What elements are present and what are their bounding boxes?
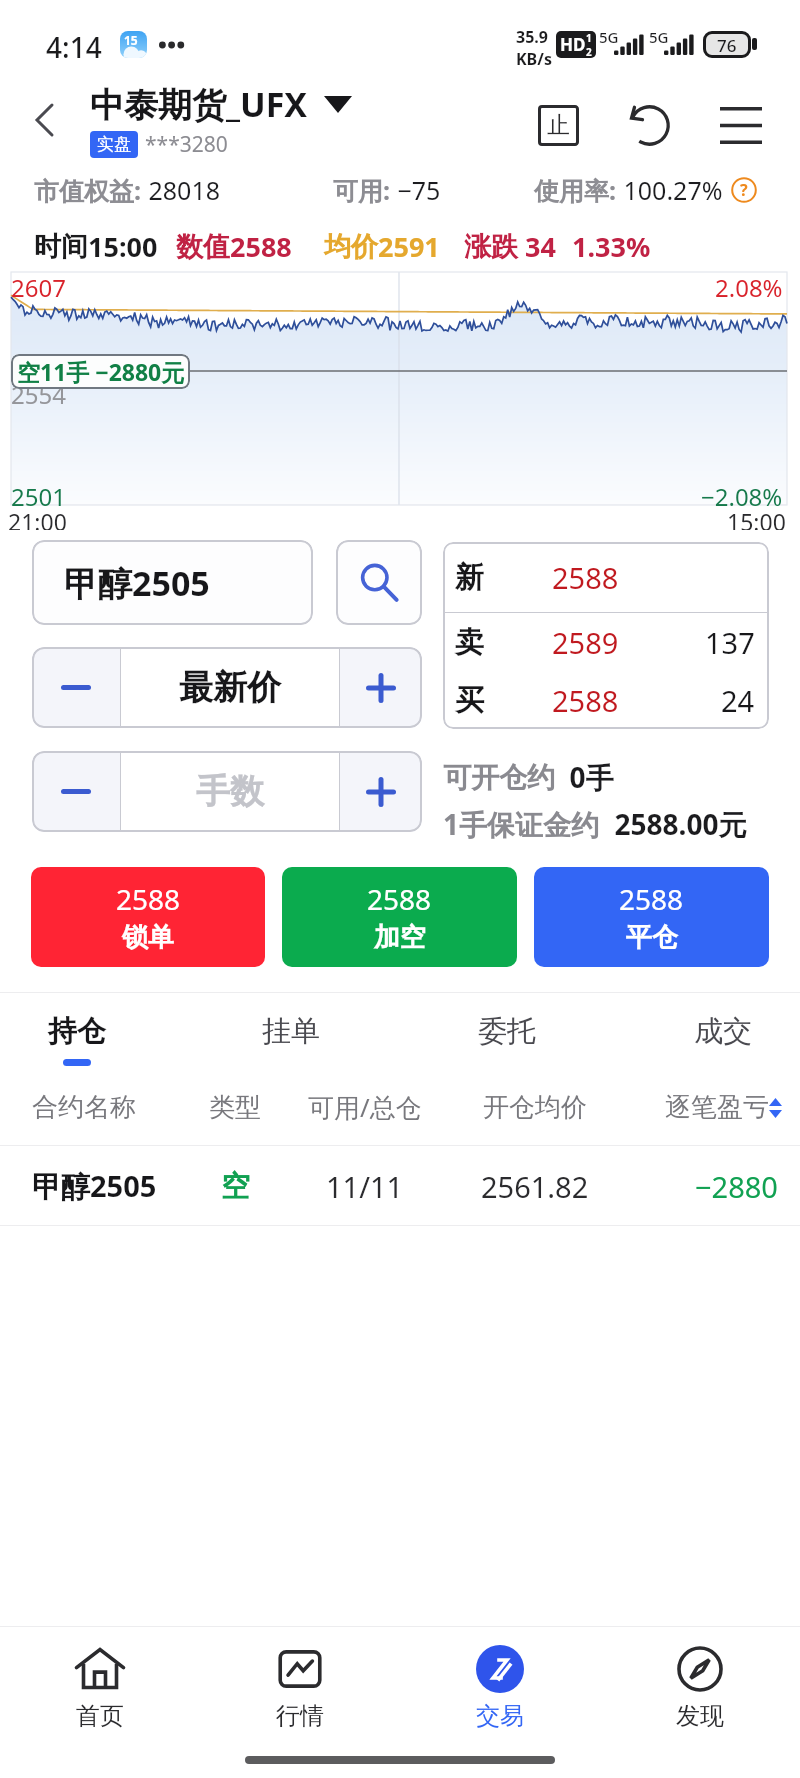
staticText: 首页 bbox=[76, 1701, 124, 1731]
staticText: 4:14 bbox=[46, 28, 102, 66]
staticText: 2588 bbox=[230, 228, 292, 265]
staticText: 1.33% bbox=[572, 228, 651, 265]
staticText: 2589 bbox=[552, 623, 619, 662]
staticText: 21:00 bbox=[8, 506, 67, 530]
staticText: 手数 bbox=[196, 770, 264, 813]
staticText: 15:00 bbox=[727, 506, 786, 530]
staticText: 1手保证金约 bbox=[443, 805, 600, 843]
staticText: 2607 bbox=[11, 271, 66, 304]
staticText: 最新价 bbox=[179, 666, 281, 709]
button[interactable]: 2588 bbox=[282, 867, 517, 967]
staticText: 止 bbox=[547, 111, 570, 140]
staticText: 空 bbox=[221, 1168, 250, 1205]
staticText: 28018 bbox=[142, 173, 221, 207]
staticText: 合约名称 bbox=[32, 1091, 136, 1124]
staticText: 平仓 bbox=[626, 921, 678, 954]
staticText: 11/11 bbox=[326, 1167, 404, 1206]
button[interactable]: 甲醇2505 bbox=[32, 540, 313, 625]
button[interactable]: Refresh bbox=[621, 97, 677, 153]
staticText: 逐笔盈亏 bbox=[665, 1091, 769, 1124]
button[interactable]: 发现 bbox=[600, 1627, 800, 1741]
staticText: 新 bbox=[455, 559, 484, 596]
staticText: 0手 bbox=[555, 758, 614, 796]
staticText: 委托 bbox=[478, 1013, 536, 1050]
staticText: 交易 bbox=[476, 1701, 524, 1731]
button[interactable]: 手数 bbox=[121, 751, 339, 832]
button[interactable]: 首页 bbox=[0, 1627, 200, 1741]
button[interactable]: Search bbox=[336, 540, 422, 625]
staticText: 中泰期货_UFX bbox=[90, 81, 308, 127]
staticText: 类型 bbox=[209, 1091, 261, 1124]
staticText: 2588 bbox=[552, 681, 619, 720]
button[interactable]: 委托 bbox=[447, 993, 567, 1068]
button[interactable]: 行情 bbox=[200, 1627, 400, 1741]
button[interactable]: 成交 bbox=[663, 993, 783, 1068]
staticText: 涨跌 bbox=[464, 230, 518, 264]
staticText: 24 bbox=[721, 681, 755, 720]
staticText: 76 bbox=[717, 34, 737, 55]
staticText: 锁单 bbox=[122, 921, 174, 954]
button[interactable]: 甲醇2505 bbox=[0, 1146, 800, 1226]
staticText: 2591 bbox=[378, 228, 440, 265]
button[interactable]: Help bbox=[730, 176, 758, 204]
staticText: 挂单 bbox=[262, 1013, 320, 1050]
staticText: 时间 bbox=[34, 230, 88, 264]
staticText: 2588.00元 bbox=[600, 805, 747, 843]
staticText: 5G bbox=[649, 27, 669, 47]
button[interactable]: 挂单 bbox=[231, 993, 351, 1068]
staticText: 2588 bbox=[116, 880, 181, 918]
button[interactable]: 持仓 bbox=[17, 993, 137, 1068]
button[interactable]: 交易 bbox=[400, 1627, 600, 1741]
button[interactable]: 2588 bbox=[534, 867, 769, 967]
staticText: 可开仓约 bbox=[443, 760, 555, 795]
staticText: 2501 bbox=[11, 480, 66, 513]
staticText: 2.08% bbox=[715, 271, 783, 304]
staticText: 加空 bbox=[374, 921, 426, 954]
staticText: 2588 bbox=[552, 558, 619, 597]
staticText: HD bbox=[560, 33, 586, 56]
staticText: 行情 bbox=[276, 1701, 324, 1731]
staticText: 2 bbox=[586, 45, 592, 58]
button[interactable]: Increase bbox=[340, 751, 422, 832]
button[interactable]: 止损设置 bbox=[530, 97, 586, 153]
staticText: 开仓均价 bbox=[483, 1091, 587, 1124]
staticText: ? bbox=[740, 179, 748, 201]
staticText: −75 bbox=[391, 173, 441, 207]
button[interactable]: Back bbox=[16, 92, 72, 148]
staticText: 15:00 bbox=[88, 228, 158, 265]
staticText: 可用: bbox=[333, 173, 391, 207]
staticText: 5G bbox=[599, 27, 619, 47]
staticText: 100.27% bbox=[617, 173, 723, 207]
staticText: 2588 bbox=[367, 880, 432, 918]
button[interactable]: Menu bbox=[713, 97, 769, 153]
staticText: KB/s bbox=[516, 48, 552, 70]
staticText: 成交 bbox=[694, 1013, 752, 1050]
staticText: 数值 bbox=[176, 230, 230, 264]
staticText: 持仓 bbox=[48, 1013, 106, 1050]
staticText: 使用率: bbox=[534, 173, 617, 207]
button[interactable]: Decrease bbox=[32, 647, 120, 728]
staticText: 1 bbox=[586, 31, 592, 45]
button[interactable]: Increase bbox=[340, 647, 422, 728]
button[interactable]: Decrease bbox=[32, 751, 120, 832]
staticText: 2588 bbox=[619, 880, 684, 918]
button[interactable]: 最新价 bbox=[121, 647, 339, 728]
staticText: 均价 bbox=[324, 230, 378, 264]
staticText: −2.08% bbox=[701, 480, 783, 513]
staticText: 34 bbox=[518, 228, 556, 265]
staticText: 实盘 bbox=[97, 134, 131, 155]
staticText: 卖 bbox=[455, 624, 484, 661]
staticText: −2880 bbox=[695, 1167, 778, 1206]
staticText: 15 bbox=[124, 32, 138, 48]
staticText: 可用/总仓 bbox=[308, 1089, 422, 1125]
staticText: 空11手 −2880元 bbox=[17, 356, 185, 387]
staticText: ***3280 bbox=[145, 130, 228, 159]
staticText: 2554 bbox=[11, 378, 66, 411]
staticText: 甲醇2505 bbox=[64, 560, 210, 606]
staticText: 发现 bbox=[676, 1701, 724, 1731]
staticText: 市值权益: bbox=[34, 173, 142, 207]
staticText: 甲醇2505 bbox=[32, 1166, 157, 1206]
staticText: 2561.82 bbox=[481, 1167, 589, 1206]
button[interactable]: 2588 bbox=[31, 867, 265, 967]
staticText: 买 bbox=[455, 682, 484, 719]
